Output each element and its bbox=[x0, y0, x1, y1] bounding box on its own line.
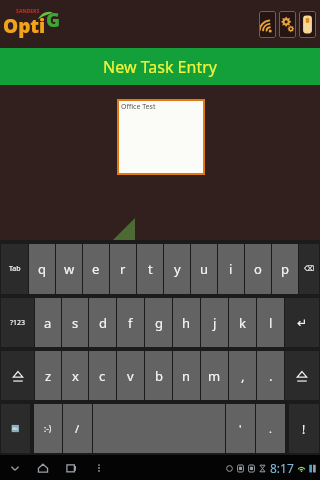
staticText: New Task Entry bbox=[103, 56, 217, 78]
staticText: 8:17 bbox=[270, 460, 294, 476]
button[interactable]: k bbox=[229, 298, 256, 347]
button[interactable]: Settings bbox=[279, 11, 296, 38]
button[interactable]: f bbox=[117, 298, 144, 347]
staticText: , bbox=[241, 367, 245, 385]
staticText: k bbox=[239, 314, 246, 332]
button[interactable]: p bbox=[272, 244, 298, 294]
staticText: l bbox=[269, 314, 273, 332]
button[interactable]: m bbox=[201, 351, 228, 400]
staticText: i bbox=[229, 260, 233, 278]
button[interactable]: Shift bbox=[1, 351, 34, 400]
staticText: y bbox=[174, 260, 181, 278]
staticText: e bbox=[92, 260, 100, 278]
button[interactable]: . bbox=[256, 404, 285, 453]
staticText: n bbox=[182, 367, 191, 385]
button[interactable]: v bbox=[117, 351, 144, 400]
staticText: / bbox=[75, 421, 80, 436]
staticText: ! bbox=[302, 421, 306, 437]
button[interactable]: s bbox=[62, 298, 88, 347]
staticText: ⌫ bbox=[304, 265, 314, 273]
button[interactable]: r bbox=[110, 244, 136, 294]
staticText: m bbox=[208, 367, 221, 385]
staticText: SANDERS bbox=[16, 8, 40, 15]
button[interactable]: i bbox=[218, 244, 244, 294]
staticText: Opti bbox=[3, 13, 46, 39]
staticText: f bbox=[128, 314, 133, 332]
button[interactable]: . bbox=[257, 351, 284, 400]
button[interactable]: Office Test bbox=[117, 99, 205, 175]
button[interactable]: SANDERS bbox=[3, 7, 61, 41]
staticText: x bbox=[72, 367, 79, 385]
button[interactable]: Home bbox=[34, 459, 51, 476]
button[interactable]: More options bbox=[90, 459, 107, 476]
staticText: j bbox=[213, 314, 217, 332]
staticText: s bbox=[72, 314, 79, 332]
staticText: c bbox=[99, 367, 106, 385]
button[interactable]: d bbox=[89, 298, 116, 347]
staticText: q bbox=[38, 260, 46, 278]
staticText: ' bbox=[239, 421, 242, 436]
staticText: t bbox=[148, 260, 153, 278]
button[interactable]: j bbox=[201, 298, 228, 347]
button[interactable]: ↵ bbox=[285, 298, 319, 347]
button[interactable]: 🔤 bbox=[1, 404, 30, 453]
staticText: 🔤 bbox=[11, 425, 20, 433]
button[interactable]: z bbox=[35, 351, 61, 400]
button[interactable]: ' bbox=[226, 404, 255, 453]
staticText: u bbox=[200, 260, 209, 278]
staticText: p bbox=[281, 260, 289, 278]
staticText: w bbox=[64, 260, 75, 278]
button[interactable]: ⌫ bbox=[299, 244, 319, 294]
staticText: Gro bbox=[46, 7, 61, 39]
staticText: Tab bbox=[9, 264, 21, 274]
button[interactable]: a bbox=[35, 298, 61, 347]
button[interactable]: w bbox=[56, 244, 82, 294]
button[interactable]: :-) bbox=[34, 404, 62, 453]
button[interactable]: Recents bbox=[62, 459, 79, 476]
staticText: g bbox=[155, 314, 163, 332]
staticText: o bbox=[254, 260, 262, 278]
staticText: r bbox=[120, 260, 126, 278]
button[interactable]: , bbox=[229, 351, 256, 400]
button[interactable]: g bbox=[145, 298, 172, 347]
button[interactable]: ! bbox=[289, 404, 319, 453]
button[interactable]: b bbox=[145, 351, 172, 400]
staticText: a bbox=[44, 314, 52, 332]
button[interactable]: o bbox=[245, 244, 271, 294]
button[interactable]: t bbox=[137, 244, 163, 294]
button[interactable]: Signal bbox=[259, 11, 276, 38]
staticText: ↵ bbox=[297, 316, 308, 330]
button[interactable]: u bbox=[191, 244, 217, 294]
staticText: :-) bbox=[44, 423, 52, 434]
button[interactable]: x bbox=[62, 351, 88, 400]
button[interactable]: h bbox=[173, 298, 200, 347]
button[interactable]: e bbox=[83, 244, 109, 294]
button[interactable]: Battery bbox=[299, 11, 316, 38]
button[interactable]: / bbox=[63, 404, 92, 453]
staticText: d bbox=[99, 314, 107, 332]
staticText: . bbox=[269, 421, 272, 436]
staticText: . bbox=[269, 367, 273, 385]
staticText: ?123 bbox=[10, 318, 26, 328]
button[interactable]: ?123 bbox=[1, 298, 34, 347]
button[interactable]: n bbox=[173, 351, 200, 400]
staticText: h bbox=[182, 314, 191, 332]
staticText: v bbox=[127, 367, 134, 385]
button[interactable]: y bbox=[164, 244, 190, 294]
button[interactable]: Shift bbox=[285, 351, 319, 400]
button[interactable]: q bbox=[29, 244, 55, 294]
button[interactable]: c bbox=[89, 351, 116, 400]
staticText: z bbox=[45, 367, 52, 385]
button[interactable]: Hide keyboard bbox=[6, 459, 23, 476]
staticText: b bbox=[155, 367, 163, 385]
button[interactable]: l bbox=[257, 298, 284, 347]
staticText: Office Test bbox=[121, 102, 156, 112]
button[interactable]: Tab bbox=[1, 244, 28, 294]
